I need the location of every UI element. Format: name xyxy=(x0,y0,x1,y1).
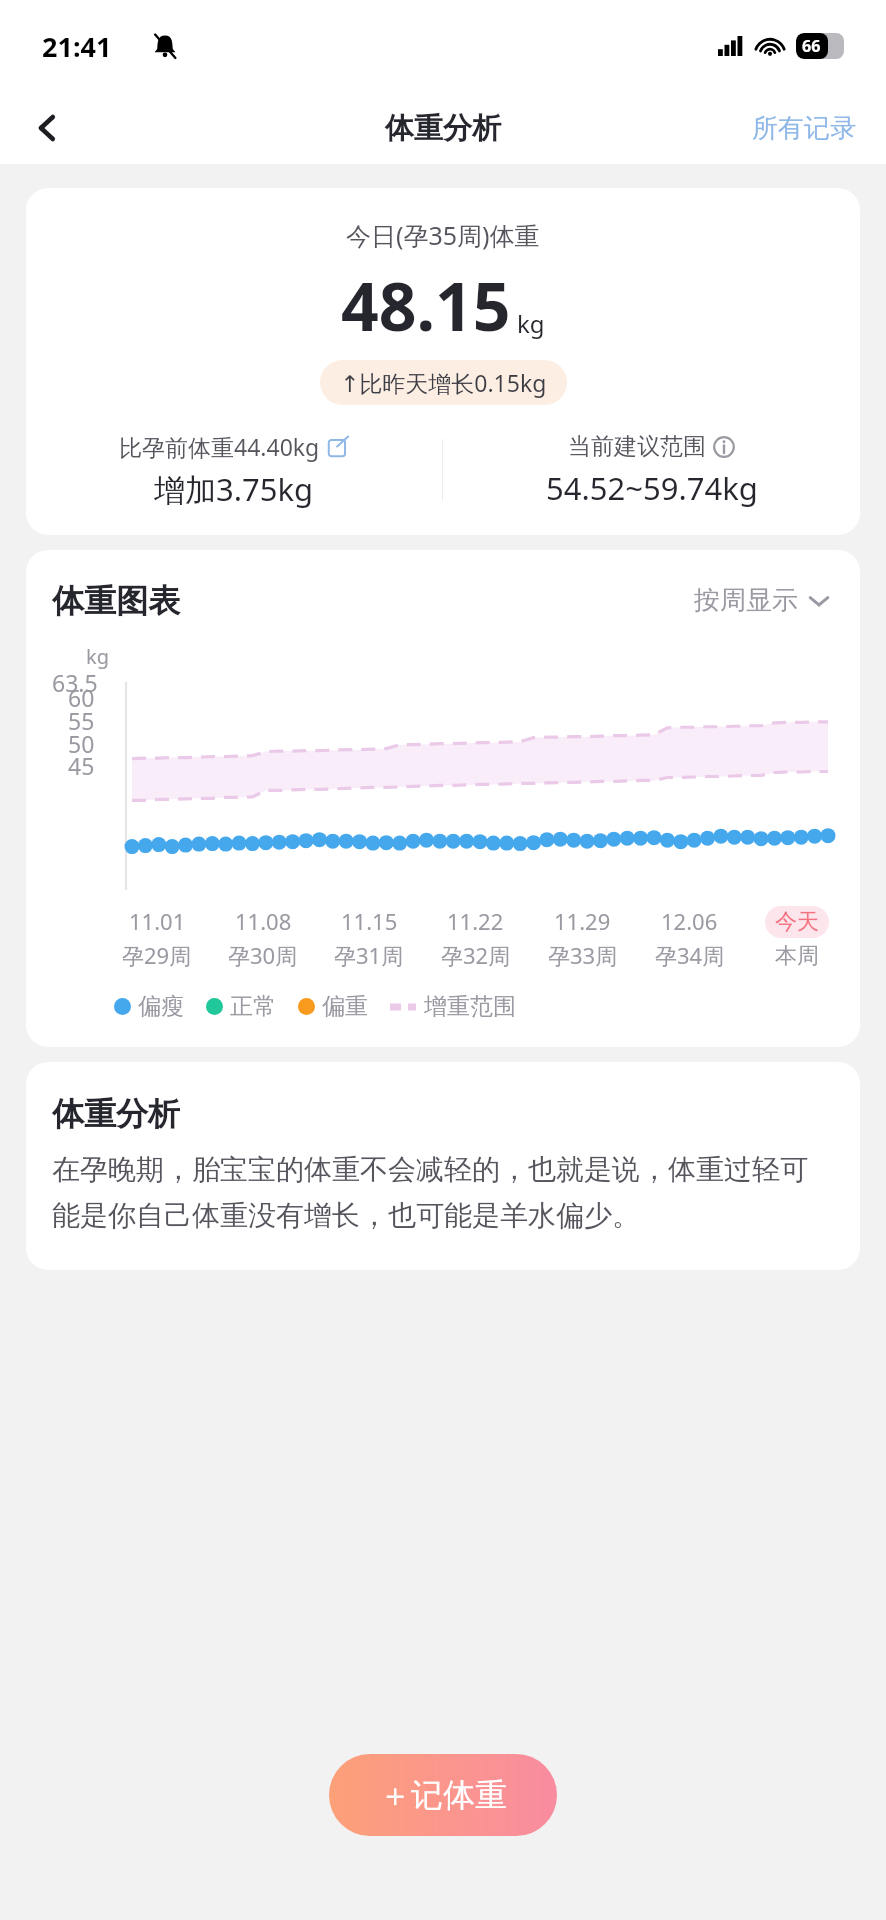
staticText: 孕32周 xyxy=(441,940,511,970)
staticText: 在孕晚期，胎宝宝的体重不会减轻的，也就是说，体重过轻可能是你自己体重没有增长，也… xyxy=(52,1152,834,1234)
staticText: 所有记录 xyxy=(752,112,856,145)
staticText: 孕30周 xyxy=(228,940,298,970)
staticText: 体重分析 xyxy=(385,110,501,147)
staticText: 偏重 xyxy=(322,992,368,1021)
staticText: 今日(孕35周)体重 xyxy=(346,218,540,252)
staticText: ＋记体重 xyxy=(379,1775,507,1815)
staticText: 体重分析 xyxy=(52,1094,180,1134)
button[interactable]: 所有记录 xyxy=(748,104,860,153)
button[interactable]: Back xyxy=(24,104,72,152)
staticText: 当前建议范围 xyxy=(568,432,706,461)
button[interactable]: ＋记体重 xyxy=(329,1754,557,1836)
staticText: 孕34周 xyxy=(655,940,725,970)
staticText: 55 xyxy=(68,705,95,736)
staticText: 21:41 xyxy=(42,28,112,65)
staticText: 63.5 xyxy=(52,667,98,698)
staticText: 本周 xyxy=(775,942,819,970)
staticText: ↑比昨天增长0.15kg xyxy=(340,367,547,398)
staticText: 体重图表 xyxy=(52,581,180,621)
staticText: 12.06 xyxy=(661,906,718,936)
staticText: 54.52~59.74kg xyxy=(546,467,758,509)
staticText: 今天 xyxy=(775,908,819,936)
staticText: kg xyxy=(517,307,545,340)
staticText: 正常 xyxy=(230,992,276,1021)
button[interactable]: Info xyxy=(713,436,735,458)
button[interactable]: 按周显示 xyxy=(690,580,834,621)
staticText: 孕31周 xyxy=(334,940,404,970)
staticText: 偏瘦 xyxy=(138,992,184,1021)
staticText: 11.29 xyxy=(554,906,611,936)
staticText: 孕29周 xyxy=(122,940,192,970)
staticText: 11.01 xyxy=(129,906,186,936)
staticText: 孕33周 xyxy=(548,940,618,970)
staticText: 增重范围 xyxy=(424,992,516,1021)
staticText: 11.22 xyxy=(447,906,504,936)
staticText: 60 xyxy=(68,682,95,713)
staticText: 50 xyxy=(68,728,95,759)
staticText: 45 xyxy=(68,750,95,781)
staticText: kg xyxy=(86,643,109,670)
staticText: 比孕前体重44.40kg xyxy=(119,431,320,462)
staticText: 11.15 xyxy=(341,906,398,936)
staticText: 按周显示 xyxy=(694,584,798,617)
staticText: 11.08 xyxy=(235,906,292,936)
button[interactable]: Edit xyxy=(327,436,349,458)
staticText: 66 xyxy=(802,35,821,57)
staticText: 增加3.75kg xyxy=(154,468,314,509)
staticText: 48.15 xyxy=(341,260,511,350)
